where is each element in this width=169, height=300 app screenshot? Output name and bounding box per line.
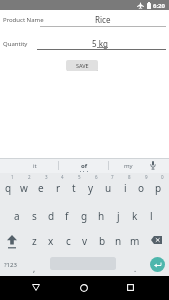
staticText: 2 [28, 174, 31, 180]
staticText: p [155, 181, 162, 195]
staticText: Rice [95, 14, 111, 25]
button[interactable]: v [77, 234, 93, 248]
staticText: b [99, 234, 106, 248]
button[interactable]: t [66, 181, 82, 195]
staticText: m [130, 234, 140, 248]
staticText: g [81, 209, 88, 223]
button[interactable]: p [150, 181, 166, 195]
staticText: . [134, 263, 137, 274]
staticText: it [33, 162, 37, 170]
button[interactable] [32, 284, 40, 291]
button[interactable]: e [33, 181, 49, 195]
staticText: Product Name [3, 16, 44, 24]
button[interactable]: q [0, 181, 16, 195]
staticText: 5 [78, 174, 81, 180]
staticText: f [65, 209, 69, 223]
button[interactable]: w [16, 181, 32, 195]
button[interactable]: s [26, 209, 42, 223]
button[interactable]: z [26, 234, 42, 248]
button[interactable] [80, 284, 88, 292]
staticText: s [32, 209, 37, 223]
button[interactable]: u [100, 181, 116, 195]
staticText: u [105, 181, 112, 195]
staticText: , [33, 263, 36, 274]
staticText: c [66, 234, 71, 248]
staticText: v [82, 234, 88, 248]
button[interactable]: f [59, 209, 75, 223]
button[interactable]: b [94, 234, 110, 248]
button[interactable]: a [9, 209, 25, 223]
button[interactable]: y [83, 181, 99, 195]
staticText: 8 [128, 174, 131, 180]
staticText: Quantity [3, 40, 28, 48]
staticText: 3 [45, 174, 48, 180]
button[interactable]: ?123 [4, 261, 17, 269]
staticText: 6:20 [153, 2, 165, 10]
button[interactable]: o [133, 181, 149, 195]
button[interactable]: my [115, 158, 141, 173]
button[interactable] [127, 284, 134, 291]
button[interactable]: Rice [40, 12, 166, 27]
button[interactable]: n [110, 234, 126, 248]
staticText: r [56, 181, 61, 195]
staticText: e [38, 181, 44, 195]
button[interactable]: h [93, 209, 109, 223]
button[interactable]: d [43, 209, 59, 223]
staticText: n [115, 234, 122, 248]
button[interactable]: j [110, 209, 126, 223]
staticText: 1 [11, 174, 14, 180]
staticText: i [124, 181, 127, 195]
staticText: 9 [145, 174, 148, 180]
button[interactable]: g [76, 209, 92, 223]
staticText: q [5, 181, 12, 195]
button[interactable]: x [43, 234, 59, 248]
staticText: h [98, 209, 105, 223]
button[interactable]: SAVE [66, 60, 98, 71]
staticText: j [117, 209, 120, 223]
button[interactable]: 5 kg [37, 36, 166, 50]
button[interactable] [150, 257, 165, 272]
staticText: l [150, 209, 153, 223]
button[interactable]: c [60, 234, 76, 248]
button[interactable]: it [22, 158, 48, 173]
staticText: 5 kg [92, 38, 108, 49]
staticText: y [88, 181, 94, 195]
staticText: SAVE [76, 62, 89, 69]
staticText: 6 [95, 174, 98, 180]
button[interactable]: . [127, 261, 143, 275]
button[interactable]: m [127, 234, 143, 248]
staticText: x [48, 234, 54, 248]
staticText: o [138, 181, 145, 195]
staticText: z [32, 234, 37, 248]
button[interactable]: k [127, 209, 143, 223]
staticText: t [72, 181, 76, 195]
button[interactable]: r [50, 181, 66, 195]
staticText: of [81, 162, 88, 170]
staticText: 7 [111, 174, 114, 180]
staticText: k [132, 209, 138, 223]
button[interactable]: of [71, 158, 97, 173]
staticText: 4 [61, 174, 64, 180]
button[interactable]: , [26, 261, 42, 275]
staticText: a [14, 209, 20, 223]
staticText: my [124, 162, 133, 170]
staticText: d [48, 209, 55, 223]
staticText: 0 [161, 174, 164, 180]
button[interactable]: i [117, 181, 133, 195]
button[interactable]: l [143, 209, 159, 223]
staticText: w [20, 181, 28, 195]
